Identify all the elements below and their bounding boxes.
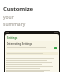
button[interactable] [6,69,58,71]
button[interactable] [6,61,58,63]
button[interactable] [6,57,58,59]
button[interactable] [6,63,58,65]
button[interactable]: Settings [4,31,60,72]
staticText: Interesting Settings [7,42,33,46]
button[interactable] [6,71,58,72]
button[interactable]: Interesting Settings [6,41,58,50]
button[interactable] [6,59,58,61]
button[interactable] [6,52,58,55]
staticText: Settings [7,36,18,39]
button[interactable]: Toggle setting [54,47,57,49]
button[interactable] [6,67,58,69]
staticText: summary [3,21,26,28]
button[interactable] [6,65,58,67]
staticText: your [3,14,14,21]
staticText: Customize [3,5,33,13]
